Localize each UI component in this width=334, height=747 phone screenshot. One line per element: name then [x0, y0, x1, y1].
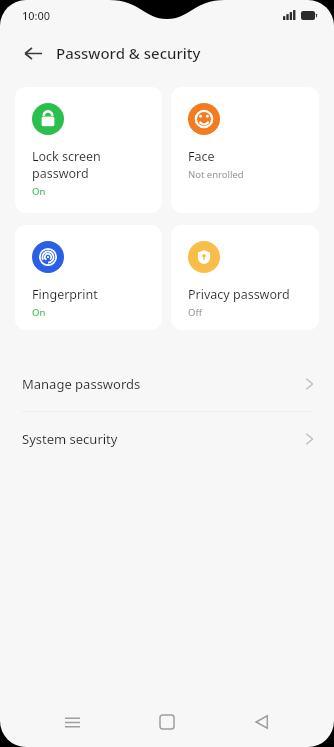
staticText: Password & security [56, 43, 201, 63]
staticText: System security [22, 430, 118, 448]
staticText: Lock screen password [32, 148, 101, 182]
staticText: Fingerprint [32, 286, 98, 303]
staticText: Off [188, 306, 202, 319]
button[interactable]: Back [14, 34, 52, 72]
button[interactable]: Manage passwords [0, 357, 334, 411]
staticText: On [32, 306, 46, 319]
staticText: 10:00 [22, 8, 51, 23]
button[interactable]: Lock screen password [15, 87, 162, 213]
staticText: On [32, 185, 46, 198]
button[interactable]: Face [171, 87, 319, 213]
button[interactable]: System security [0, 412, 334, 466]
button[interactable]: Back [239, 699, 285, 745]
button[interactable]: Privacy password [171, 225, 319, 330]
button[interactable]: Fingerprint [15, 225, 162, 330]
staticText: Not enrolled [188, 168, 244, 181]
staticText: Privacy password [188, 286, 290, 303]
staticText: Face [188, 148, 215, 165]
staticText: Manage passwords [22, 375, 141, 393]
button[interactable]: Home [144, 699, 190, 745]
button[interactable]: Recents [49, 699, 95, 745]
